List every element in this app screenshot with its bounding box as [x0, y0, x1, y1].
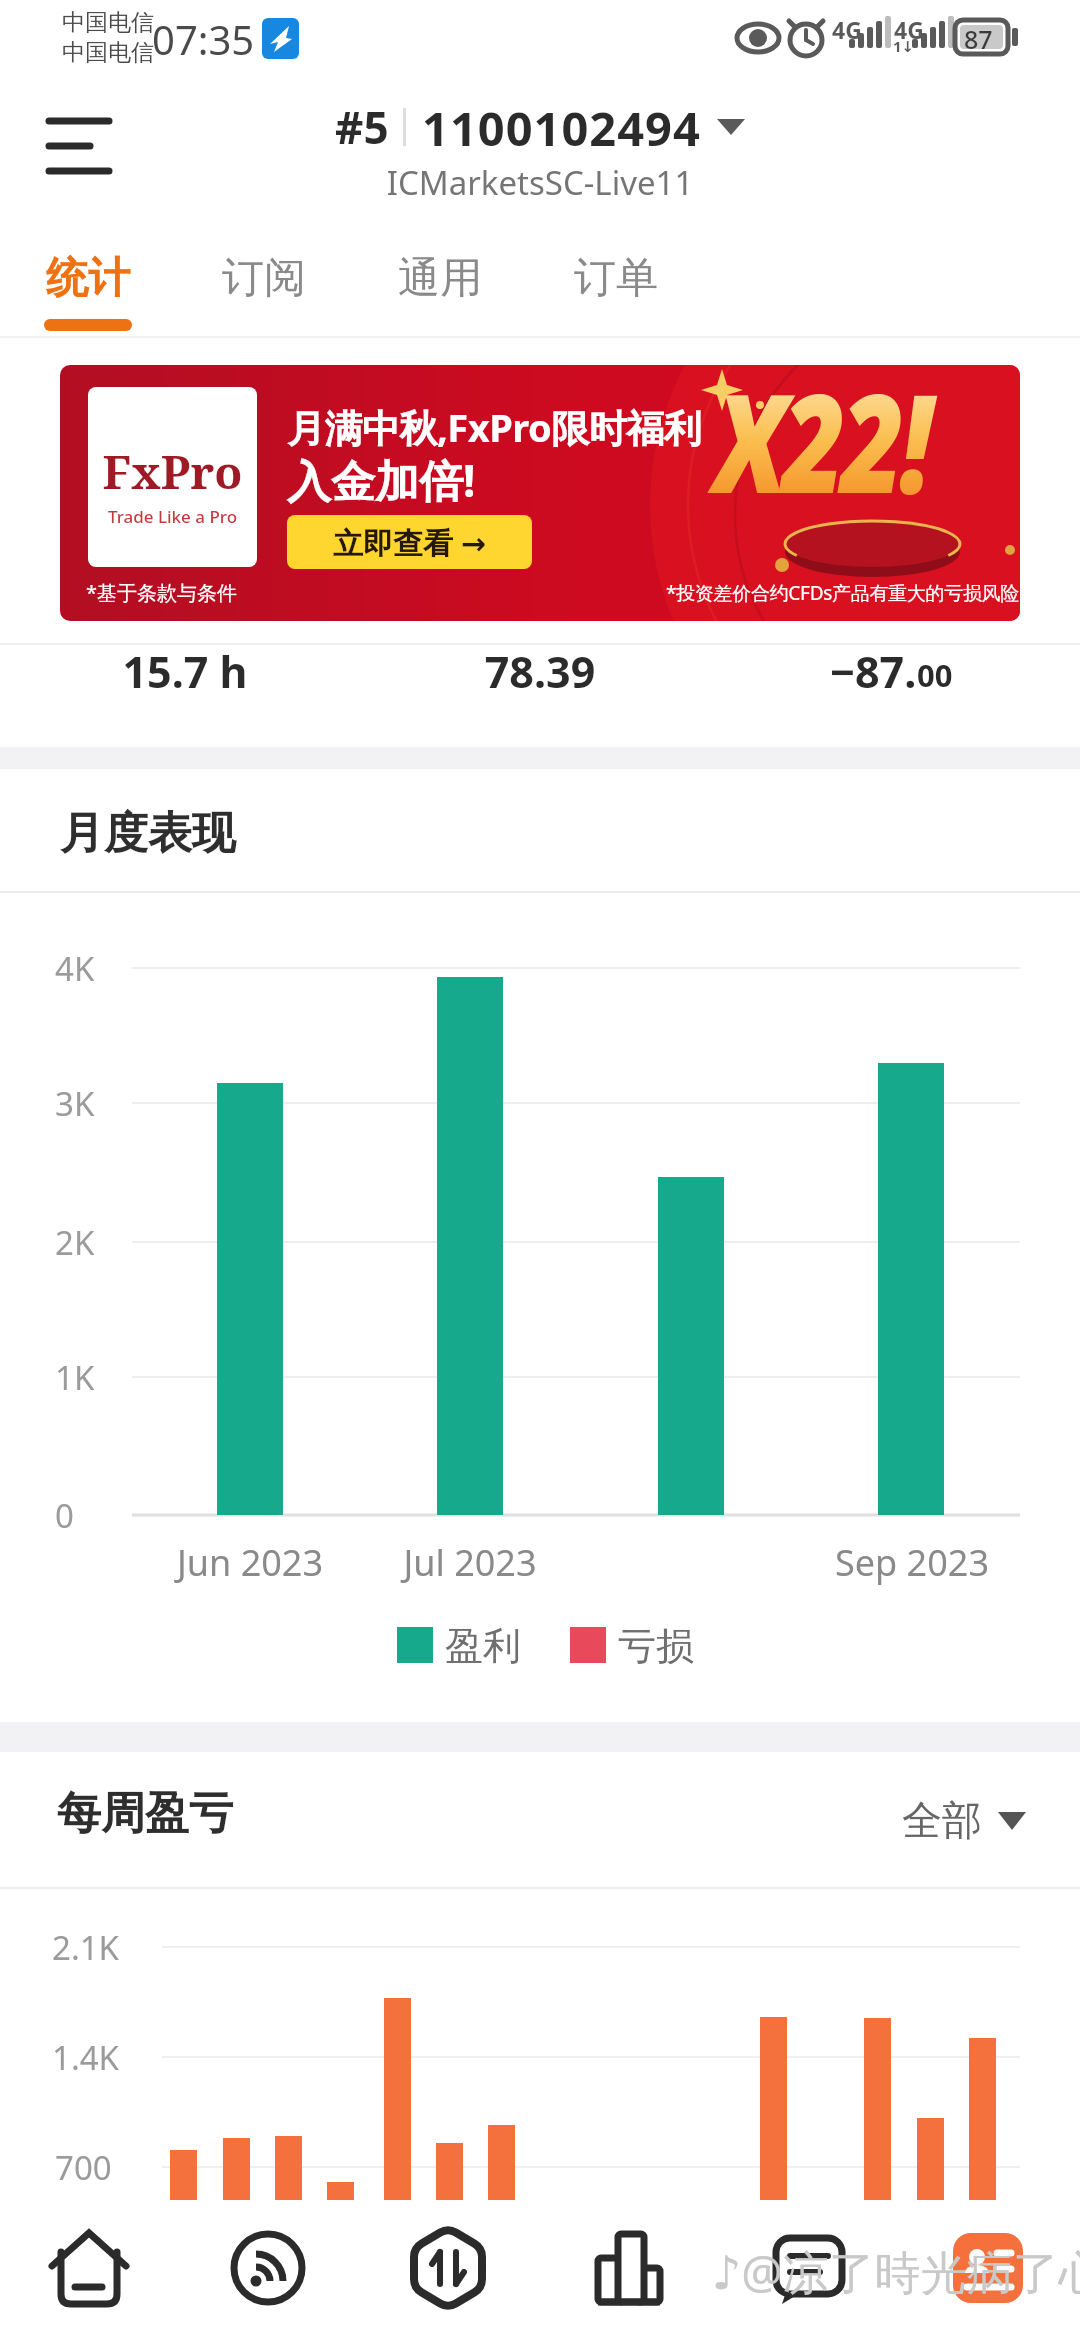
staticText: 中国电信: [62, 38, 154, 67]
button[interactable]: [398, 2218, 498, 2318]
button[interactable]: FxPro: [60, 365, 1020, 621]
staticText: 订阅: [222, 252, 306, 305]
staticText: 订单: [574, 252, 658, 305]
button[interactable]: [218, 2218, 318, 2318]
button[interactable]: 每周盈亏: [57, 1786, 233, 1841]
staticText: ICMarketsSC-Live11: [0, 160, 1080, 205]
staticText: 1.4K: [52, 2035, 120, 2080]
staticText: 4K: [55, 946, 95, 991]
staticText: #5: [335, 97, 389, 157]
staticText: 4G: [894, 14, 924, 45]
staticText: 3K: [55, 1081, 95, 1126]
staticText: *基于条款与条件: [86, 579, 238, 606]
staticText: 每周盈亏: [57, 1786, 233, 1841]
staticText: 00: [917, 654, 953, 696]
staticText: 700: [55, 2145, 112, 2190]
staticText: ♪@凉了時光病了心: [712, 2240, 1080, 2303]
staticText: Trade Like a Pro: [88, 505, 257, 528]
staticText: 15.7 h: [120, 642, 250, 701]
button[interactable]: #5: [0, 96, 1080, 158]
staticText: 2.1K: [52, 1925, 120, 1970]
staticText: *投资差价合约CFDs产品有重大的亏损风险: [666, 580, 1020, 606]
staticText: 07:35: [152, 12, 255, 66]
staticText: 入金加倍!: [287, 450, 476, 510]
staticText: 4G: [832, 14, 862, 45]
staticText: 中国电信: [62, 8, 154, 37]
button[interactable]: [953, 2233, 1023, 2303]
staticText: 亏损: [618, 1622, 694, 1670]
button[interactable]: 通用: [374, 240, 506, 316]
button[interactable]: [34, 104, 124, 194]
button[interactable]: 订单: [550, 240, 682, 316]
button[interactable]: [578, 2218, 678, 2318]
staticText: 1↓: [893, 36, 915, 56]
button[interactable]: [38, 2218, 138, 2318]
staticText: Jul 2023: [380, 1538, 560, 1587]
staticText: X22!: [714, 365, 928, 533]
staticText: 通用: [398, 252, 482, 305]
staticText: 盈利: [445, 1622, 521, 1670]
staticText: 0: [55, 1493, 74, 1538]
staticText: Jun 2023: [160, 1538, 340, 1587]
staticText: 1100102494: [422, 96, 701, 158]
staticText: 78.39: [470, 642, 610, 701]
staticText: 87: [964, 22, 993, 56]
staticText: FxPro: [88, 440, 257, 503]
button[interactable]: 统计: [22, 240, 154, 316]
staticText: 统计: [46, 252, 130, 305]
staticText: 全部: [902, 1795, 982, 1845]
staticText: 1K: [55, 1355, 95, 1400]
staticText: Sep 2023: [822, 1538, 1002, 1587]
staticText: 2K: [55, 1220, 95, 1265]
staticText: 月满中秋,FxPro限时福利: [287, 401, 702, 453]
button[interactable]: 立即查看 →: [287, 515, 532, 569]
staticText: 立即查看 →: [333, 522, 486, 563]
staticText: 月度表现: [60, 806, 236, 861]
button[interactable]: 全部: [900, 1790, 1040, 1850]
button[interactable]: 订阅: [198, 240, 330, 316]
staticText: −87.: [830, 642, 917, 698]
button[interactable]: [758, 2218, 858, 2318]
